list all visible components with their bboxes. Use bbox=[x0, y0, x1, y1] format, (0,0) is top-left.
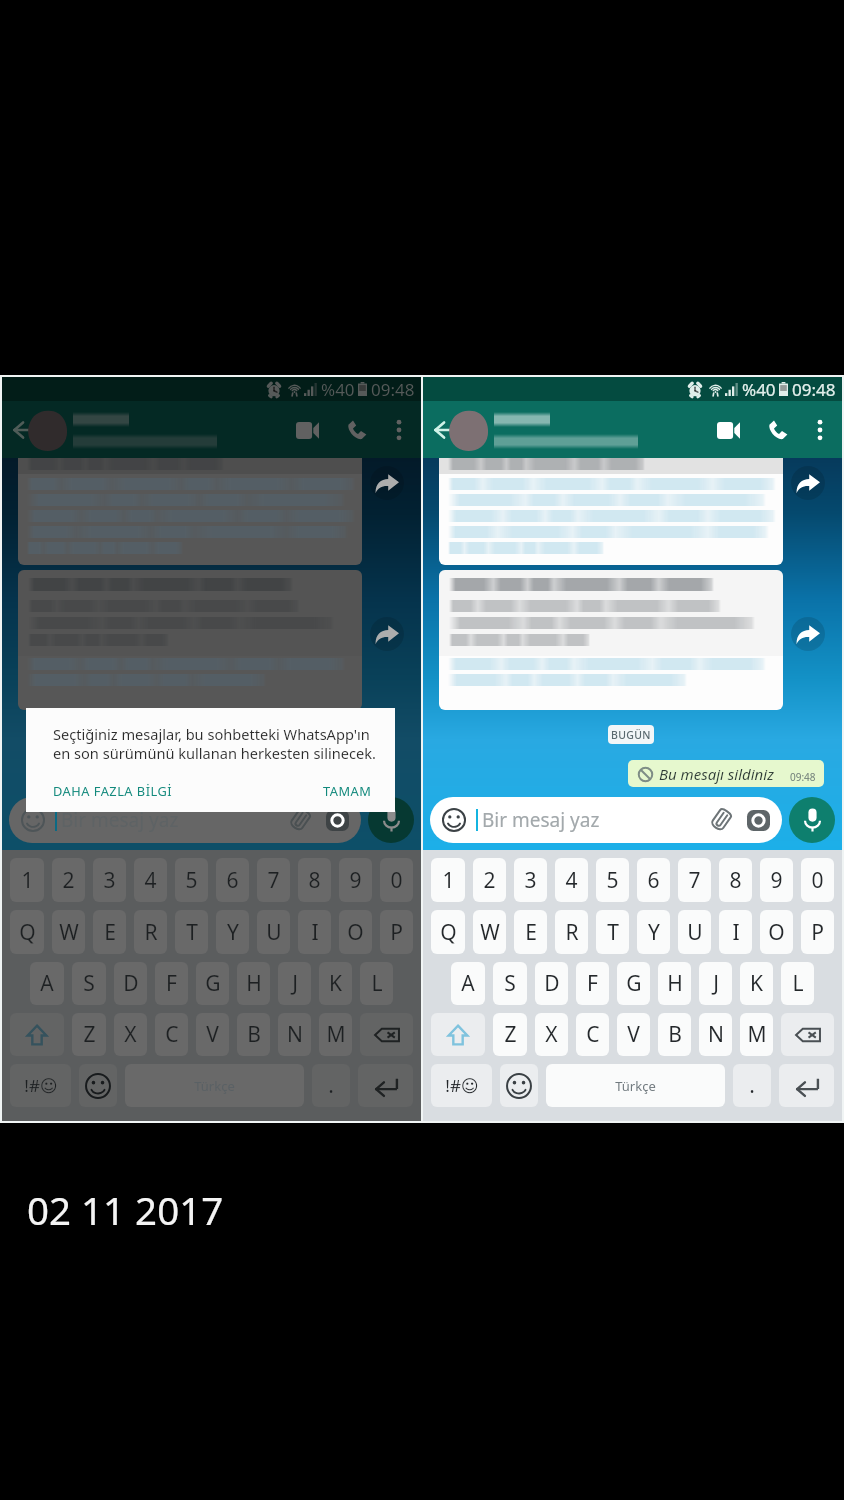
button[interactable]: K bbox=[319, 962, 352, 1005]
button[interactable]: Voice message bbox=[789, 797, 835, 843]
button[interactable]: G bbox=[196, 962, 229, 1005]
button[interactable]: Back bbox=[428, 412, 464, 448]
button[interactable]: 6 bbox=[216, 858, 249, 902]
button[interactable]: . bbox=[312, 1064, 350, 1107]
button[interactable]: K bbox=[740, 962, 773, 1005]
button[interactable]: Y bbox=[637, 910, 670, 954]
button[interactable]: Bir mesaj yaz bbox=[430, 797, 782, 843]
button[interactable]: W bbox=[52, 910, 85, 954]
button[interactable]: 7 bbox=[678, 858, 711, 902]
button[interactable]: Enter bbox=[358, 1064, 413, 1107]
button[interactable]: Emoji bbox=[500, 1064, 538, 1107]
button[interactable]: 7 bbox=[257, 858, 290, 902]
button[interactable]: 2 bbox=[473, 858, 506, 902]
button[interactable]: R bbox=[134, 910, 167, 954]
button[interactable]: F bbox=[576, 962, 609, 1005]
button[interactable]: 2 bbox=[52, 858, 85, 902]
button[interactable]: BUGÜN bbox=[608, 725, 654, 744]
button[interactable]: Call bbox=[339, 412, 375, 448]
button[interactable]: M bbox=[319, 1013, 352, 1056]
button[interactable]: Forward bbox=[791, 617, 825, 651]
button[interactable]: Call bbox=[760, 412, 796, 448]
button[interactable]: H bbox=[237, 962, 270, 1005]
button[interactable]: J bbox=[699, 962, 732, 1005]
button[interactable]: G bbox=[617, 962, 650, 1005]
button[interactable]: U bbox=[257, 910, 290, 954]
button[interactable]: 3 bbox=[93, 858, 126, 902]
button[interactable]: R bbox=[555, 910, 588, 954]
button[interactable]: Q bbox=[10, 910, 44, 954]
button[interactable]: I bbox=[298, 910, 331, 954]
button[interactable]: A bbox=[30, 962, 64, 1005]
button[interactable]: N bbox=[699, 1013, 732, 1056]
button[interactable]: Emoji bbox=[79, 1064, 117, 1107]
button[interactable]: 8 bbox=[719, 858, 752, 902]
button[interactable]: 1 bbox=[10, 858, 44, 902]
button[interactable]: . bbox=[733, 1064, 771, 1107]
button[interactable]: S bbox=[72, 962, 106, 1005]
button[interactable]: Forward bbox=[370, 466, 404, 500]
button[interactable]: 8 bbox=[298, 858, 331, 902]
button[interactable]: B bbox=[237, 1013, 270, 1056]
button[interactable]: W bbox=[473, 910, 506, 954]
button[interactable]: X bbox=[535, 1013, 568, 1056]
button[interactable]: C bbox=[155, 1013, 188, 1056]
button[interactable]: 3 bbox=[514, 858, 547, 902]
button[interactable]: D bbox=[535, 962, 568, 1005]
button[interactable]: B bbox=[658, 1013, 691, 1056]
button[interactable]: Türkçe bbox=[546, 1064, 725, 1107]
button[interactable]: V bbox=[617, 1013, 650, 1056]
button[interactable]: 4 bbox=[134, 858, 167, 902]
button[interactable]: H bbox=[658, 962, 691, 1005]
button[interactable]: 0 bbox=[380, 858, 413, 902]
button[interactable]: Bir mesaj yaz bbox=[9, 797, 361, 843]
button[interactable]: L bbox=[360, 962, 393, 1005]
button[interactable]: O bbox=[339, 910, 372, 954]
button[interactable]: 9 bbox=[339, 858, 372, 902]
button[interactable]: !#☺ bbox=[10, 1064, 71, 1107]
button[interactable]: F bbox=[155, 962, 188, 1005]
button[interactable]: Enter bbox=[779, 1064, 834, 1107]
button[interactable]: X bbox=[114, 1013, 147, 1056]
button[interactable]: TAMAM bbox=[323, 782, 372, 799]
button[interactable]: 0 bbox=[801, 858, 834, 902]
button[interactable]: Voice message bbox=[368, 797, 414, 843]
button[interactable]: Backspace bbox=[360, 1013, 413, 1056]
button[interactable]: DAHA FAZLA BİLGİ bbox=[53, 782, 173, 799]
button[interactable]: J bbox=[278, 962, 311, 1005]
button[interactable]: Y bbox=[216, 910, 249, 954]
button[interactable]: O bbox=[760, 910, 793, 954]
button[interactable]: T bbox=[175, 910, 208, 954]
button[interactable]: 5 bbox=[596, 858, 629, 902]
button[interactable]: L bbox=[781, 962, 814, 1005]
button[interactable]: Forward bbox=[370, 617, 404, 651]
button[interactable]: I bbox=[719, 910, 752, 954]
button[interactable]: 5 bbox=[175, 858, 208, 902]
button[interactable]: Back bbox=[7, 412, 43, 448]
button[interactable]: 6 bbox=[637, 858, 670, 902]
button[interactable]: Z bbox=[493, 1013, 527, 1056]
button[interactable]: S bbox=[493, 962, 527, 1005]
button[interactable]: Shift bbox=[10, 1013, 64, 1056]
button[interactable]: 1 bbox=[431, 858, 465, 902]
button[interactable]: Z bbox=[72, 1013, 106, 1056]
button[interactable]: 9 bbox=[760, 858, 793, 902]
button[interactable]: Shift bbox=[431, 1013, 485, 1056]
button[interactable]: Forward bbox=[791, 466, 825, 500]
button[interactable]: Bu mesajı sildiniz bbox=[628, 760, 824, 787]
button[interactable]: T bbox=[596, 910, 629, 954]
button[interactable]: E bbox=[514, 910, 547, 954]
button[interactable]: More options bbox=[383, 414, 415, 446]
button[interactable]: Video call bbox=[289, 412, 325, 448]
button[interactable]: Q bbox=[431, 910, 465, 954]
button[interactable]: A bbox=[451, 962, 485, 1005]
button[interactable]: More options bbox=[804, 414, 836, 446]
button[interactable]: P bbox=[801, 910, 834, 954]
button[interactable]: E bbox=[93, 910, 126, 954]
button[interactable]: !#☺ bbox=[431, 1064, 492, 1107]
button[interactable]: U bbox=[678, 910, 711, 954]
button[interactable]: P bbox=[380, 910, 413, 954]
button[interactable]: Backspace bbox=[781, 1013, 834, 1056]
button[interactable]: M bbox=[740, 1013, 773, 1056]
button[interactable]: Video call bbox=[710, 412, 746, 448]
